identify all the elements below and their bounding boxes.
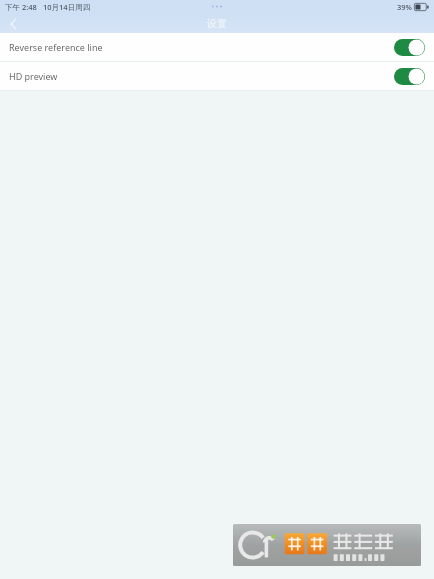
- staticText: 下午 2:48: [5, 2, 37, 12]
- staticText: Reverse reference line: [9, 41, 103, 53]
- button[interactable]: Toggle on: [394, 68, 425, 85]
- staticText: 设置: [207, 17, 227, 30]
- staticText: 10月14日周四: [43, 2, 91, 12]
- button[interactable]: Toggle on: [394, 39, 425, 56]
- button[interactable]: Back: [0, 14, 26, 33]
- button[interactable]: HD preview: [0, 62, 434, 90]
- staticText: HD preview: [9, 70, 58, 82]
- button[interactable]: Reverse reference line: [0, 33, 434, 61]
- staticText: 39%: [397, 2, 412, 12]
